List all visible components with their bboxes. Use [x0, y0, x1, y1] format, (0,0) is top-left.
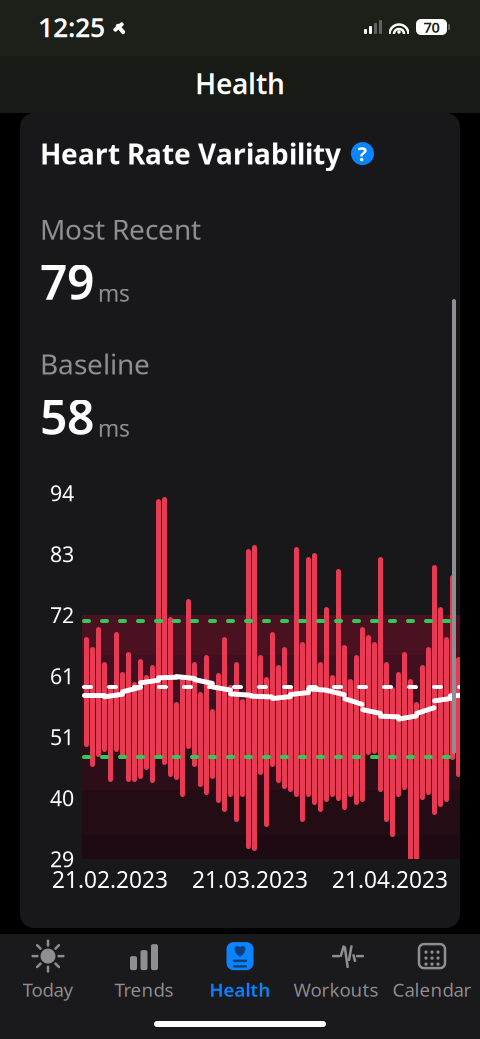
staticText: Health	[195, 65, 285, 102]
button[interactable]: Workouts	[288, 942, 384, 1000]
button[interactable]: Today	[0, 942, 96, 1000]
staticText: 40	[50, 784, 74, 812]
staticText: Heart Rate Variability	[100, 924, 221, 988]
button[interactable]: Calendar	[384, 942, 480, 1000]
staticText: Baseline	[40, 345, 150, 382]
staticText: 29	[50, 845, 74, 873]
staticText: 70	[423, 17, 439, 37]
staticText: 94	[50, 479, 74, 507]
button[interactable]: Health	[192, 942, 288, 1000]
staticText: 72	[50, 601, 74, 629]
staticText: ?	[357, 140, 367, 167]
staticText: 21.03.2023	[192, 864, 308, 894]
staticText: 83	[50, 540, 74, 568]
staticText: ms	[98, 278, 130, 308]
button[interactable]: Help about Heart Rate Variability	[351, 140, 374, 167]
staticText: Most Recent	[40, 210, 201, 247]
staticText: Today	[22, 977, 73, 1002]
staticText: Normal	[100, 1006, 184, 1038]
staticText: Normal	[306, 1006, 390, 1038]
staticText: 61	[50, 662, 74, 690]
staticText: Trend	[306, 924, 371, 956]
staticText: 58	[40, 384, 94, 448]
staticText: Heart Rate Variability	[40, 135, 341, 172]
staticText: Health	[209, 977, 270, 1002]
staticText: ms	[98, 413, 130, 443]
staticText: 12:25	[38, 9, 105, 45]
staticText: Calendar	[392, 977, 471, 1002]
staticText: 21.04.2023	[332, 864, 448, 894]
staticText: 79	[40, 249, 94, 313]
button[interactable]: Trends	[96, 942, 192, 1000]
staticText: 51	[50, 723, 74, 751]
staticText: Trends	[114, 977, 173, 1002]
staticText: Workouts	[293, 977, 378, 1002]
staticText: 21.02.2023	[52, 864, 168, 894]
